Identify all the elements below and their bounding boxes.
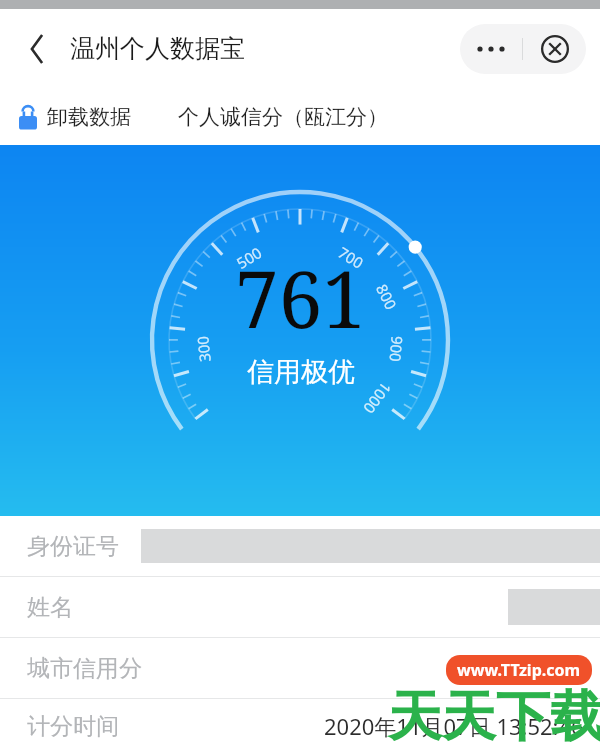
staticText: 2020年11月07日 13:52:46 (324, 711, 584, 741)
button[interactable]: Back (12, 24, 62, 74)
button[interactable]: Close (523, 24, 586, 74)
staticText: 姓名 (27, 593, 73, 622)
staticText: 761 (235, 245, 366, 351)
staticText: www.TTzip.com (457, 659, 581, 681)
button[interactable]: 城市信用分 (0, 638, 600, 698)
staticText: 761 (534, 652, 576, 685)
button[interactable]: More options (460, 24, 522, 74)
staticText: 信用极优 (247, 355, 355, 389)
button[interactable]: 姓名 (0, 577, 600, 637)
staticText: 温州个人数据宝 (70, 33, 245, 64)
button[interactable]: 计分时间 (0, 699, 600, 753)
staticText: 身份证号 (27, 532, 119, 561)
button[interactable]: 身份证号 (0, 516, 600, 576)
staticText: 城市信用分 (27, 654, 142, 683)
button[interactable]: 个人诚信分（瓯江分） (178, 104, 388, 130)
button[interactable]: 卸载数据 (16, 103, 131, 131)
staticText: 计分时间 (27, 712, 119, 741)
staticText: 卸载数据 (47, 104, 131, 130)
staticText: 天天下载 (388, 683, 600, 751)
